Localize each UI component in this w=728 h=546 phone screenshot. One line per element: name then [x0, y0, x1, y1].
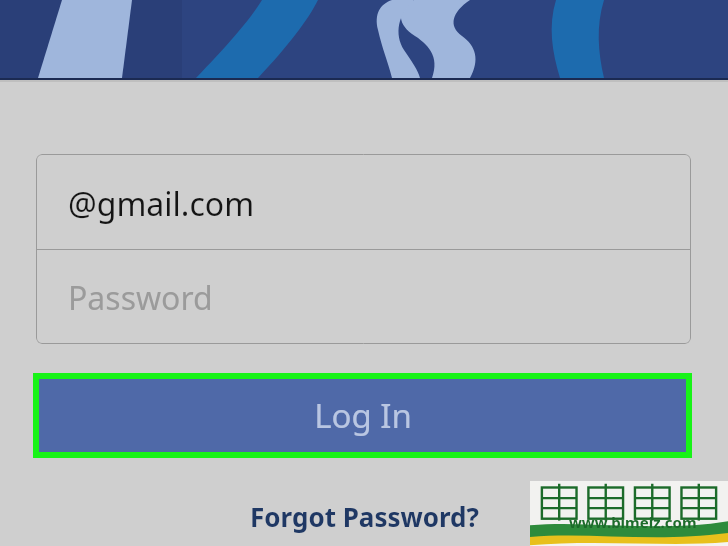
- button[interactable]: Forgot Password?: [232, 494, 496, 538]
- staticText: www.bimeiz.com: [569, 512, 697, 532]
- staticText: Forgot Password?: [250, 499, 479, 534]
- staticText: @gmail.com: [68, 182, 255, 226]
- button[interactable]: Log In: [33, 373, 692, 458]
- staticText: Log In: [314, 393, 412, 438]
- staticText: Password: [68, 276, 213, 320]
- button[interactable]: @gmail.com: [36, 154, 691, 249]
- button[interactable]: Password: [36, 250, 691, 344]
